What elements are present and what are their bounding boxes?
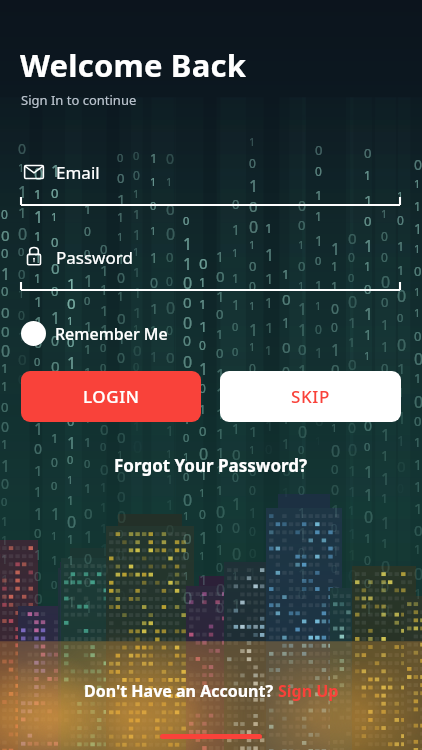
staticText: 0 bbox=[117, 506, 127, 528]
staticText: 1 bbox=[166, 446, 173, 461]
staticText: 1 bbox=[18, 202, 27, 222]
button[interactable]: LOGIN bbox=[21, 371, 201, 422]
staticText: 0 bbox=[331, 520, 338, 535]
staticText: 0 bbox=[216, 501, 226, 523]
staticText: 1 bbox=[315, 208, 322, 224]
staticText: 1 bbox=[232, 568, 239, 583]
staticText: 0 bbox=[84, 246, 91, 261]
staticText: 0 bbox=[315, 410, 324, 430]
staticText: 0 bbox=[331, 299, 340, 318]
staticText: 0 bbox=[364, 144, 372, 162]
staticText: 0 bbox=[84, 293, 91, 308]
staticText: 1 bbox=[364, 167, 371, 183]
staticText: 0 bbox=[348, 291, 358, 313]
staticText: 1 bbox=[249, 298, 256, 313]
staticText: 0 bbox=[18, 265, 26, 283]
staticText: 1 bbox=[67, 591, 76, 611]
staticText: 0 bbox=[249, 216, 259, 238]
staticText: 0 bbox=[315, 388, 324, 408]
button[interactable]: Remember Me bbox=[21, 319, 168, 348]
staticText: 0 bbox=[67, 293, 76, 313]
staticText: 1 bbox=[84, 596, 94, 618]
staticText: 0 bbox=[18, 370, 26, 388]
button[interactable]: Forgot Your Password? bbox=[104, 450, 318, 481]
staticText: 0 bbox=[216, 305, 224, 323]
staticText: 0 bbox=[133, 398, 140, 413]
staticText: 1 bbox=[298, 564, 308, 586]
staticText: 1 bbox=[166, 495, 175, 514]
staticText: 0 bbox=[282, 362, 291, 381]
staticText: 0 bbox=[183, 528, 192, 548]
staticText: Remember Me bbox=[55, 323, 168, 345]
button[interactable]: SKIP bbox=[220, 371, 401, 422]
staticText: 1 bbox=[199, 401, 206, 417]
staticText: 0 bbox=[34, 524, 42, 542]
staticText: 0 bbox=[100, 240, 108, 258]
staticText: 1 bbox=[381, 446, 390, 465]
staticText: 1 bbox=[315, 186, 323, 204]
staticText: 0 bbox=[364, 506, 374, 528]
staticText: 1 bbox=[414, 584, 422, 603]
staticText: 1 bbox=[18, 328, 25, 344]
staticText: 0 bbox=[331, 359, 340, 379]
staticText: 1 bbox=[34, 248, 43, 267]
staticText: 1 bbox=[364, 303, 374, 325]
staticText: 0 bbox=[133, 359, 140, 374]
staticText: 0 bbox=[298, 339, 307, 359]
staticText: 1 bbox=[249, 564, 256, 580]
staticText: 0 bbox=[414, 520, 422, 540]
staticText: 0 bbox=[315, 321, 322, 337]
staticText: 1 bbox=[84, 410, 91, 426]
staticText: 1 bbox=[1, 532, 8, 548]
staticText: 0 bbox=[133, 378, 142, 397]
staticText: 0 bbox=[150, 198, 157, 213]
staticText: 1 bbox=[298, 503, 307, 522]
staticText: 0 bbox=[381, 402, 391, 424]
staticText: 0 bbox=[298, 196, 307, 215]
staticText: 0 bbox=[232, 344, 239, 359]
staticText: 1 bbox=[84, 270, 94, 292]
staticText: 0 bbox=[67, 511, 77, 533]
staticText: 1 bbox=[199, 485, 206, 500]
staticText: 1 bbox=[100, 499, 107, 515]
staticText: 0 bbox=[183, 312, 193, 334]
staticText: 0 bbox=[249, 462, 257, 480]
staticText: 0 bbox=[34, 588, 43, 608]
staticText: 0 bbox=[183, 548, 190, 563]
staticText: 0 bbox=[381, 293, 389, 311]
button[interactable]: Don't Have an Account? bbox=[76, 676, 347, 706]
staticText: 1 bbox=[282, 410, 290, 428]
staticText: 1 bbox=[364, 190, 373, 210]
staticText: 1 bbox=[331, 238, 341, 260]
staticText: 0 bbox=[166, 248, 174, 266]
staticText: 0 bbox=[133, 148, 140, 163]
staticText: 1 bbox=[414, 284, 421, 299]
staticText: 0 bbox=[84, 549, 93, 568]
staticText: 0 bbox=[34, 439, 43, 458]
staticText: 1 bbox=[216, 540, 225, 559]
staticText: 1 bbox=[282, 434, 291, 453]
staticText: 0 bbox=[1, 302, 10, 322]
staticText: 0 bbox=[117, 268, 126, 287]
staticText: 0 bbox=[34, 163, 44, 185]
staticText: 0 bbox=[51, 454, 58, 470]
staticText: 0 bbox=[183, 351, 193, 373]
button[interactable]: Password bbox=[0, 244, 422, 293]
button[interactable]: Email bbox=[0, 159, 422, 208]
staticText: 1 bbox=[397, 261, 405, 279]
staticText: 0 bbox=[381, 359, 389, 377]
staticText: 1 bbox=[298, 380, 308, 402]
staticText: 0 bbox=[84, 223, 91, 239]
staticText: 0 bbox=[348, 439, 358, 461]
staticText: 0 bbox=[381, 599, 390, 619]
staticText: 0 bbox=[414, 155, 422, 174]
